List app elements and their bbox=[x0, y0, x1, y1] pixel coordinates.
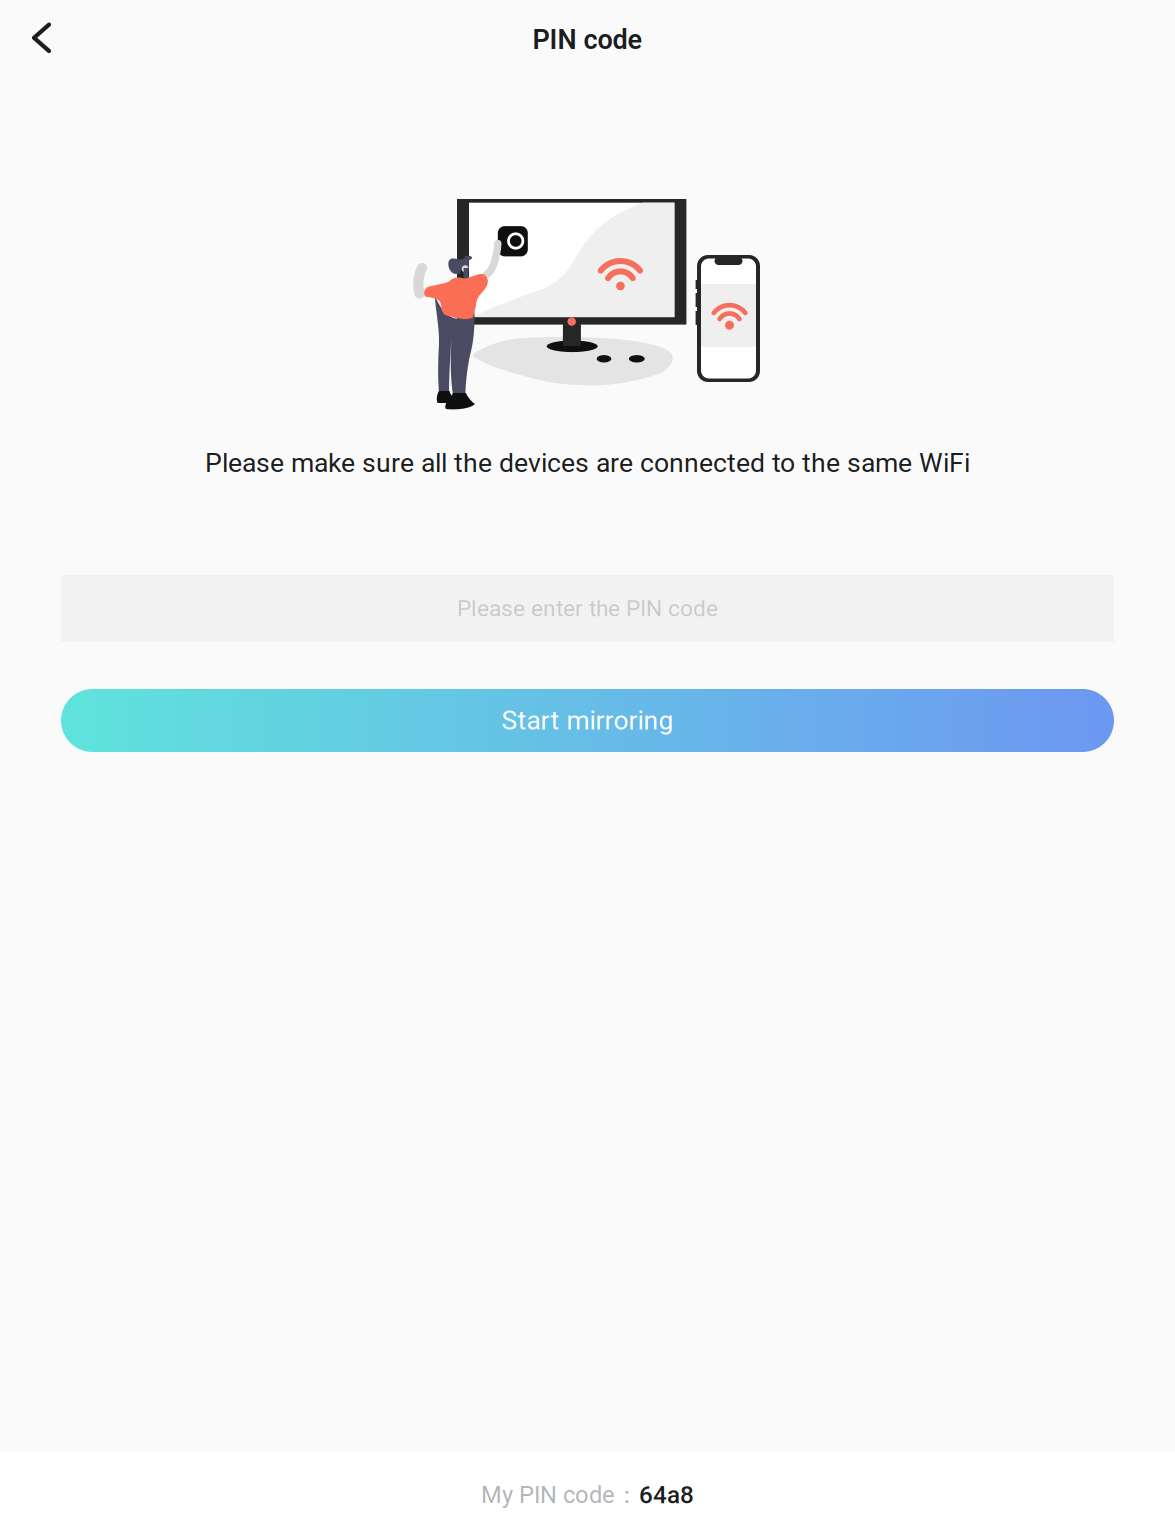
staticText: PIN code bbox=[532, 24, 642, 55]
staticText: Please make sure all the devices are con… bbox=[205, 447, 970, 479]
staticText: Start mirroring bbox=[501, 705, 673, 736]
staticText: 64a8 bbox=[639, 1481, 694, 1509]
button[interactable]: Back bbox=[0, 0, 81, 76]
staticText: My PIN code： bbox=[481, 1480, 639, 1510]
staticText: Please enter the PIN code bbox=[457, 595, 718, 622]
button[interactable]: Start mirroring bbox=[61, 689, 1114, 752]
